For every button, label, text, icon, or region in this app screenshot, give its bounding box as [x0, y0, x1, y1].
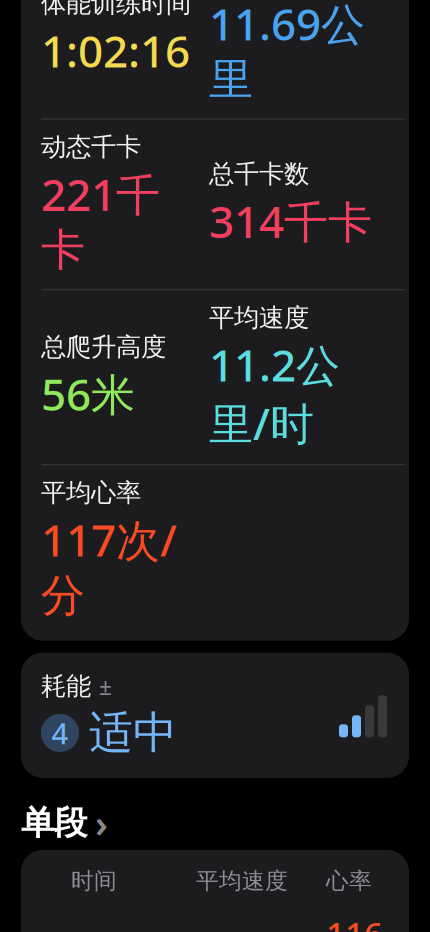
staticText: 体能训练时间: [41, 0, 191, 19]
staticText: 单段: [21, 802, 87, 843]
staticText: 适中: [89, 706, 177, 760]
staticText: 时间: [71, 867, 117, 895]
button[interactable]: 耗能: [0, 653, 430, 778]
staticText: 116次/分: [326, 911, 405, 932]
button[interactable]: 单段: [0, 806, 430, 840]
staticText: 动态千卡: [41, 132, 141, 163]
staticText: 11.69公里: [209, 0, 365, 107]
staticText: 221千卡: [41, 165, 160, 277]
staticText: 总千卡数: [209, 159, 309, 190]
staticText: 56米: [41, 364, 135, 423]
staticText: 平均速度: [209, 302, 309, 333]
staticText: 4: [51, 713, 68, 752]
staticText: 1:02:16: [41, 21, 190, 80]
staticText: 平均速度: [196, 867, 288, 895]
staticText: 11.2公里/时: [209, 335, 340, 452]
staticText: 平均心率: [41, 477, 141, 508]
staticText: ±: [99, 671, 112, 701]
staticText: 117次/分: [41, 510, 177, 623]
staticText: 心率: [326, 867, 372, 895]
staticText: 总爬升高度: [41, 331, 166, 362]
staticText: 耗能: [41, 671, 91, 702]
staticText: 314千卡: [209, 192, 372, 250]
staticText: ›: [95, 798, 108, 848]
